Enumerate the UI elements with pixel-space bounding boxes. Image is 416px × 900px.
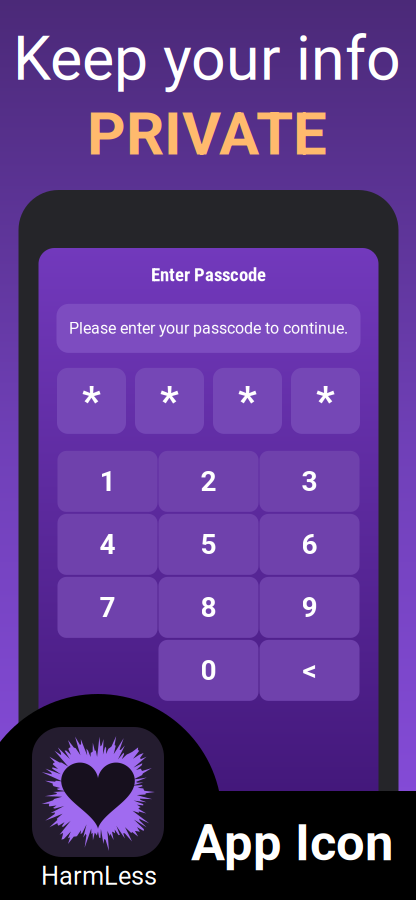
staticText: 8 [200, 591, 216, 624]
staticText: * [82, 377, 101, 425]
button[interactable]: 6 [259, 514, 359, 575]
staticText: < [302, 654, 316, 687]
staticText: 1 [99, 465, 115, 498]
staticText: 2 [200, 465, 216, 498]
staticText: 4 [99, 528, 115, 561]
staticText: * [160, 377, 179, 425]
button[interactable]: 1 [57, 451, 157, 512]
button[interactable]: 4 [57, 514, 157, 575]
staticText: App Icon [191, 813, 393, 873]
staticText: 7 [99, 591, 115, 624]
staticText: Enter Passcode [151, 264, 266, 286]
button[interactable]: HarmLess [41, 861, 157, 891]
staticText: Please enter your passcode to continue. [69, 319, 348, 338]
button[interactable]: 0 [158, 640, 258, 701]
staticText: HarmLess [41, 861, 157, 891]
button[interactable]: 2 [158, 451, 258, 512]
button[interactable]: < [259, 640, 359, 701]
staticText: * [316, 377, 335, 425]
button[interactable]: 7 [57, 577, 157, 638]
staticText: 0 [200, 654, 216, 687]
staticText: * [238, 377, 257, 425]
button[interactable]: 5 [158, 514, 258, 575]
button[interactable]: 8 [158, 577, 258, 638]
staticText: 6 [301, 528, 317, 561]
staticText: 5 [200, 528, 216, 561]
staticText: Keep your info [13, 23, 401, 95]
staticText: 3 [301, 465, 317, 498]
button[interactable]: 9 [259, 577, 359, 638]
staticText: 9 [301, 591, 317, 624]
staticText: PRIVATE [87, 99, 327, 169]
button[interactable]: 3 [259, 451, 359, 512]
